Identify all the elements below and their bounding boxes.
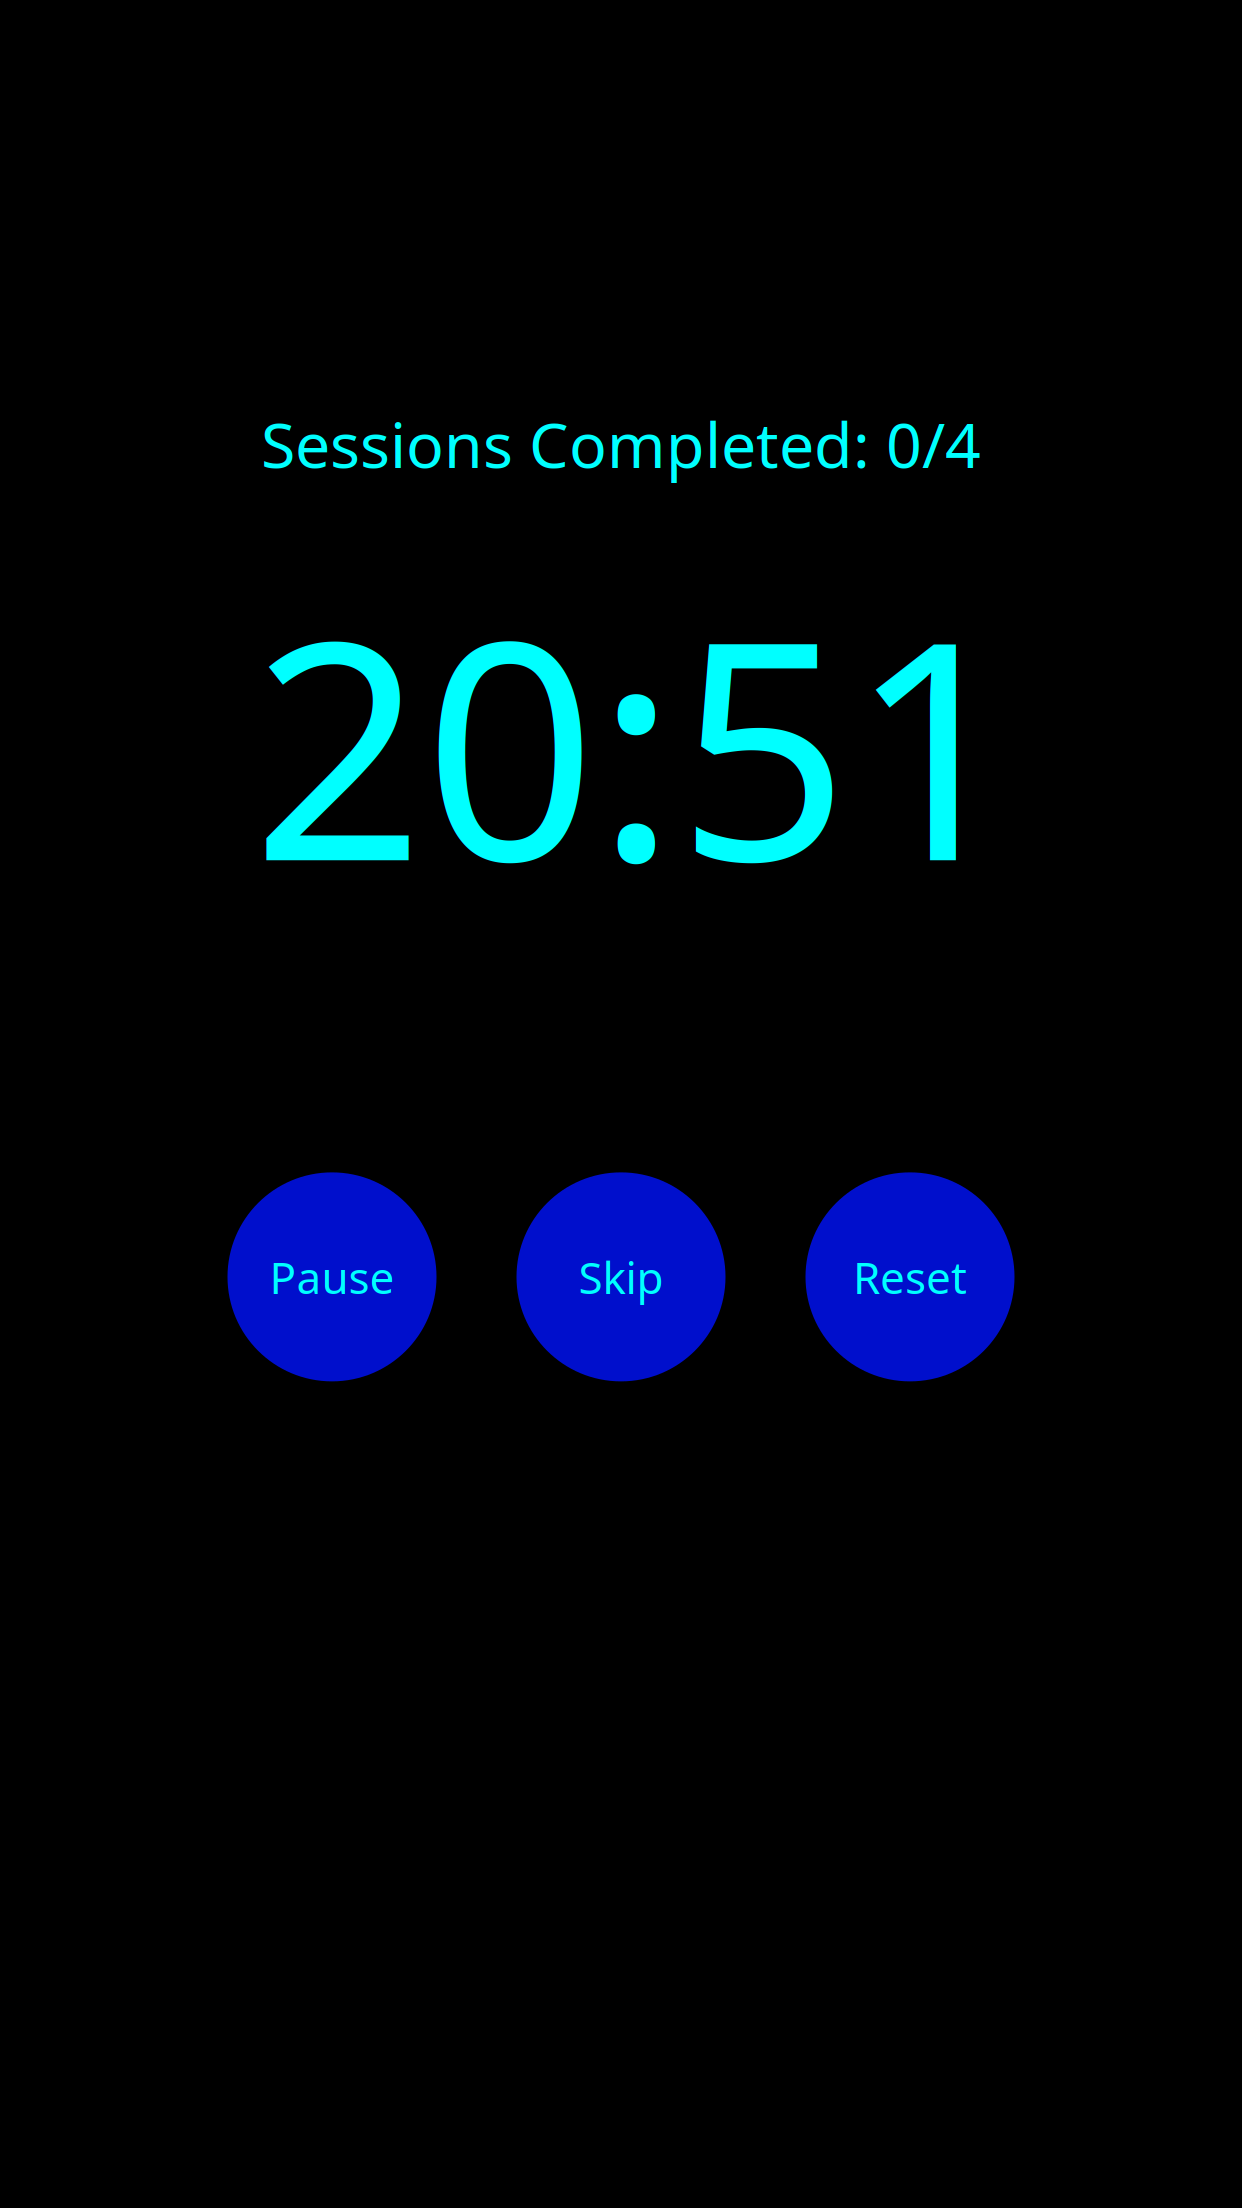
staticText: Skip [578, 1248, 663, 1306]
button[interactable]: Skip [516, 1172, 725, 1381]
button[interactable]: Pause [227, 1172, 436, 1381]
staticText: 20:51 [252, 543, 1021, 943]
staticText: Sessions Completed: 0/4 [261, 402, 981, 485]
staticText: Reset [853, 1248, 967, 1306]
button[interactable]: Reset [805, 1172, 1014, 1381]
staticText: Pause [269, 1248, 394, 1306]
